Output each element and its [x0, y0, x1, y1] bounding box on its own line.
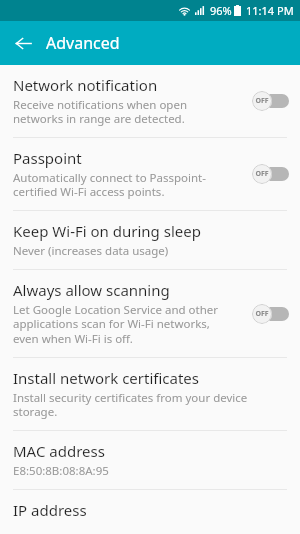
staticText: Receive notifications when open networks… — [13, 97, 188, 127]
button[interactable]: Install network certificates — [0, 358, 300, 430]
staticText: Let Google Location Service and other ap… — [13, 302, 219, 347]
staticText: Advanced — [46, 32, 120, 54]
staticText: Network notification — [13, 75, 158, 95]
button[interactable]: Toggle off — [252, 303, 290, 325]
button[interactable]: Always allow scanning — [0, 270, 300, 357]
staticText: Never (increases data usage) — [13, 243, 169, 259]
staticText: Keep Wi-Fi on during sleep — [13, 221, 201, 241]
button[interactable]: Passpoint — [0, 138, 300, 210]
staticText: Install security certificates from your … — [13, 390, 248, 420]
button[interactable]: IP address — [0, 490, 300, 530]
staticText: Always allow scanning — [13, 280, 170, 300]
button[interactable]: Network notification — [0, 65, 300, 137]
button[interactable]: Toggle off — [252, 163, 290, 185]
button[interactable]: MAC address — [0, 431, 300, 489]
staticText: IP address — [13, 500, 87, 520]
staticText: OFF — [255, 309, 269, 319]
staticText: Automatically connect to Passpoint- cert… — [13, 170, 206, 200]
staticText: E8:50:8B:08:8A:95 — [13, 463, 109, 479]
staticText: OFF — [255, 96, 269, 106]
staticText: Passpoint — [13, 148, 82, 168]
button[interactable]: Toggle off — [252, 90, 290, 112]
staticText: MAC address — [13, 441, 105, 461]
button[interactable]: Keep Wi-Fi on during sleep — [0, 211, 300, 269]
button[interactable]: Back — [8, 28, 38, 58]
staticText: Install network certificates — [13, 368, 199, 388]
staticText: 96% — [210, 3, 232, 18]
staticText: OFF — [255, 169, 269, 179]
staticText: 11:14 PM — [246, 3, 294, 18]
